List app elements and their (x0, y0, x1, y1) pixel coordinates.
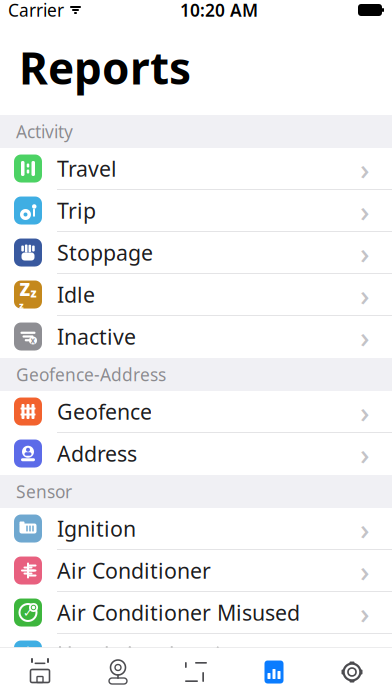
staticText: › (360, 509, 370, 548)
staticText: › (360, 275, 370, 314)
button[interactable]: Places (79, 648, 157, 696)
staticText: Sensor (16, 480, 72, 503)
button[interactable]: Harsh Acceleration (0, 634, 392, 676)
staticText: Reports (19, 38, 191, 97)
staticText: › (360, 635, 370, 674)
staticText: › (360, 392, 370, 431)
staticText: › (360, 233, 370, 272)
button[interactable]: Travel (0, 148, 392, 190)
button[interactable]: Address (0, 433, 392, 475)
button[interactable]: Geofence (0, 391, 392, 433)
staticText: Geofence-Address (16, 363, 166, 386)
button[interactable]: Stoppage (0, 232, 392, 274)
staticText: Air Conditioner (57, 556, 211, 585)
staticText: › (360, 434, 370, 473)
staticText: › (360, 551, 370, 590)
staticText: Air Conditioner Misused (57, 598, 300, 627)
staticText: z (30, 285, 36, 301)
button[interactable]: Reports (235, 648, 313, 696)
staticText: Stoppage (57, 238, 153, 267)
staticText: › (360, 149, 370, 188)
button[interactable]: Settings (313, 648, 391, 696)
button[interactable]: Trip (0, 190, 392, 232)
staticText: Carrier (8, 0, 64, 21)
staticText: › (360, 191, 370, 230)
button[interactable]: x (0, 316, 392, 358)
staticText: Inactive (57, 322, 136, 351)
staticText: 10:20 AM (180, 0, 258, 21)
button[interactable]: Z (0, 274, 392, 316)
staticText: Address (57, 439, 137, 468)
button[interactable]: Air Conditioner (0, 550, 392, 592)
staticText: x (30, 335, 35, 346)
staticText: Geofence (57, 397, 152, 426)
button[interactable]: Ignition (0, 508, 392, 550)
staticText: › (360, 593, 370, 632)
staticText: z (19, 299, 24, 311)
staticText: Idle (57, 280, 95, 309)
button[interactable]: Track (157, 648, 235, 696)
staticText: Harsh Acceleration (57, 640, 247, 669)
staticText: ✓ (23, 606, 33, 619)
staticText: Ignition (57, 514, 136, 543)
button[interactable]: ✓ (0, 592, 392, 634)
button[interactable]: Home (1, 648, 79, 696)
staticText: Activity (16, 120, 73, 143)
staticText: Travel (57, 154, 117, 183)
staticText: Trip (57, 196, 96, 225)
staticText: Z (19, 278, 30, 301)
staticText: › (360, 317, 370, 356)
